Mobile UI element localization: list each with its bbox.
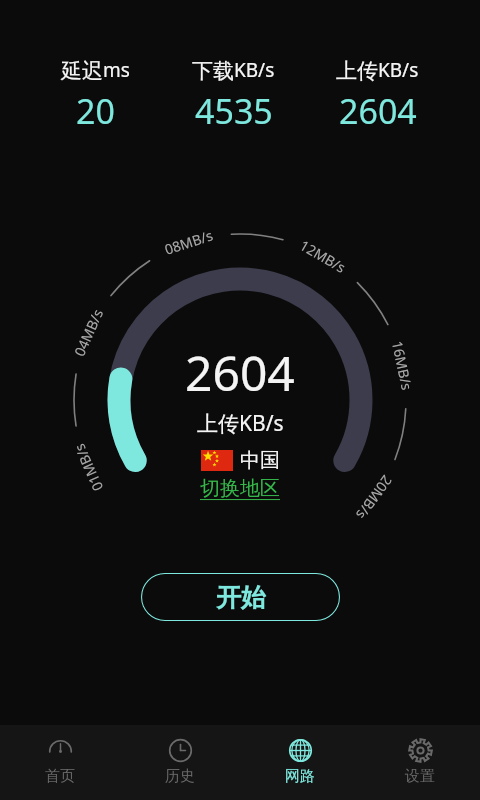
staticText: 2604 [185,340,295,405]
staticText: ms [103,57,130,83]
staticText: 首页 [45,767,75,786]
staticText: 上传KB/s [197,409,284,438]
staticText: 历史 [165,767,195,786]
button[interactable]: 首页 [0,725,120,800]
button[interactable]: 开始 [141,573,340,621]
staticText: 切换地区 [200,476,280,501]
staticText: 20 [76,88,115,134]
button[interactable]: 切换地区 [200,476,280,501]
staticText: KB/s [378,57,419,83]
button[interactable]: 历史 [120,725,240,800]
staticText: 延迟 [61,58,103,84]
staticText: 下载 [192,58,234,84]
staticText: 上传 [336,58,378,84]
staticText: 网路 [285,767,315,786]
staticText: 设置 [405,767,435,786]
staticText: 开始 [216,582,266,613]
staticText: 4535 [195,88,273,134]
staticText: KB/s [234,57,275,83]
staticText: 中国 [240,448,280,473]
button[interactable]: 网路 [240,725,360,800]
staticText: 2604 [339,88,417,134]
button[interactable]: 设置 [360,725,480,800]
